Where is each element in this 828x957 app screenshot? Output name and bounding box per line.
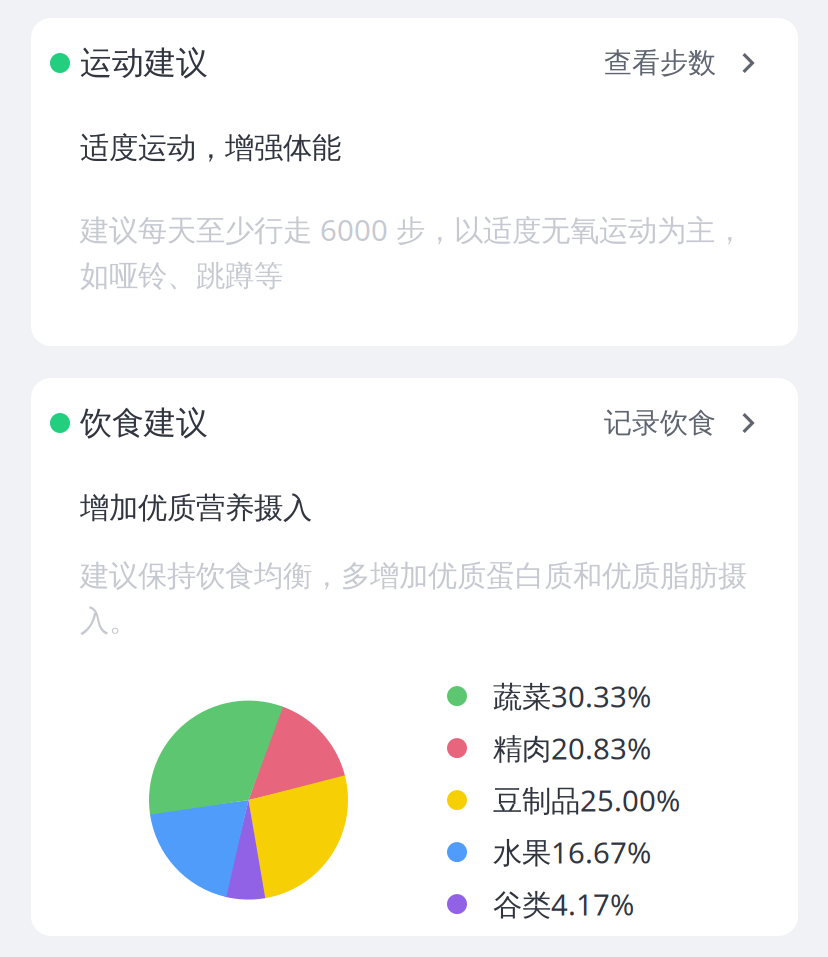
staticText: 查看步数	[604, 46, 716, 80]
staticText: 记录饮食	[604, 406, 716, 440]
staticText: 建议每天至少行走 6000 步，以适度无氧运动为主，如哑铃、跳蹲等	[80, 210, 744, 294]
staticText: 饮食建议	[80, 403, 208, 443]
staticText: 建议保持饮食均衡，多增加优质蛋白质和优质脂肪摄入。	[80, 558, 747, 639]
staticText: 豆制品25.00%	[493, 781, 680, 820]
staticText: 水果16.67%	[493, 833, 651, 872]
staticText: 谷类4.17%	[493, 885, 634, 924]
button[interactable]: 记录饮食	[604, 406, 754, 440]
staticText: 增加优质营养摄入	[80, 490, 312, 526]
staticText: 运动建议	[80, 43, 208, 83]
staticText: 适度运动，增强体能	[80, 130, 341, 166]
button[interactable]: 查看步数	[604, 46, 754, 80]
staticText: 蔬菜30.33%	[493, 677, 651, 716]
staticText: 精肉20.83%	[493, 729, 651, 768]
